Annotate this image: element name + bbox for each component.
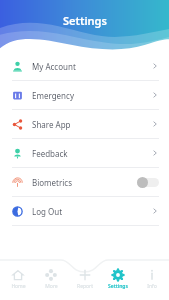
staticText: Share App — [32, 119, 71, 130]
button[interactable]: Emergency — [0, 81, 169, 109]
button[interactable]: Feedback — [0, 139, 169, 167]
button[interactable]: Share App — [0, 110, 169, 138]
button[interactable]: More — [35, 266, 67, 293]
button[interactable]: Info — [136, 266, 168, 293]
staticText: Settings — [108, 283, 128, 290]
staticText: Log Out — [32, 206, 63, 217]
button[interactable]: Biometrics — [0, 168, 169, 196]
button[interactable]: Report — [69, 266, 101, 293]
button[interactable]: Biometrics toggle — [137, 177, 159, 188]
button[interactable]: Home — [2, 266, 34, 293]
button[interactable]: My Account — [0, 52, 169, 80]
staticText: Settings — [63, 13, 107, 28]
staticText: Feedback — [32, 148, 68, 159]
staticText: Emergency — [32, 90, 74, 101]
staticText: More — [45, 283, 58, 290]
staticText: Info — [147, 283, 157, 290]
staticText: Biometrics — [32, 177, 73, 188]
button[interactable]: Log Out — [0, 197, 169, 225]
staticText: Home — [11, 283, 26, 290]
staticText: Report — [77, 283, 93, 290]
button[interactable]: Settings — [102, 266, 134, 293]
staticText: My Account — [32, 61, 76, 72]
